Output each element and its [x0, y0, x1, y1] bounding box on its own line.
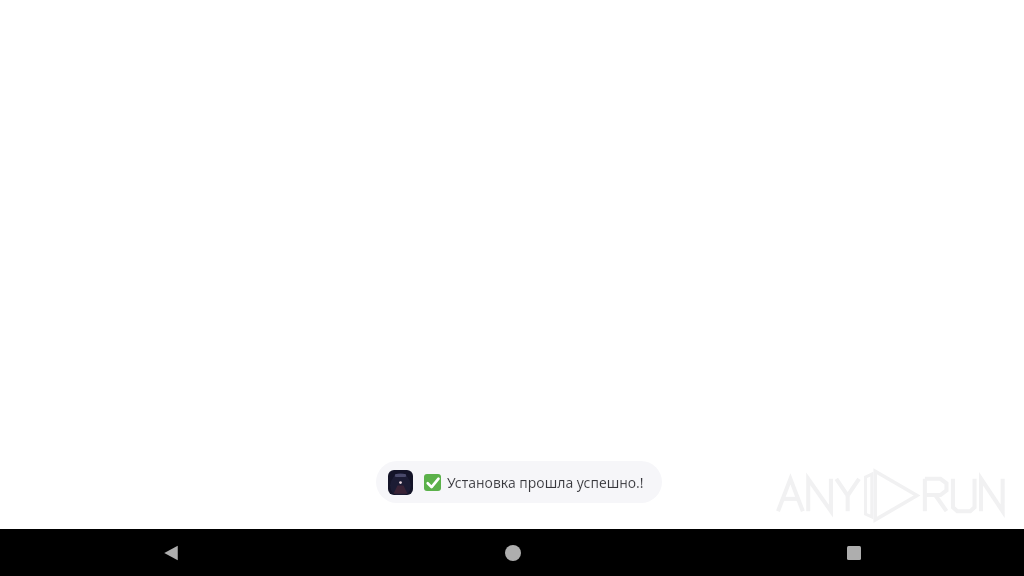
button[interactable]: Home — [342, 529, 683, 576]
button[interactable]: Back — [0, 529, 342, 576]
button[interactable]: Установка прошла успешно.! — [376, 461, 662, 503]
staticText: Установка прошла успешно.! — [447, 473, 644, 492]
button[interactable]: Recent apps — [683, 529, 1024, 576]
